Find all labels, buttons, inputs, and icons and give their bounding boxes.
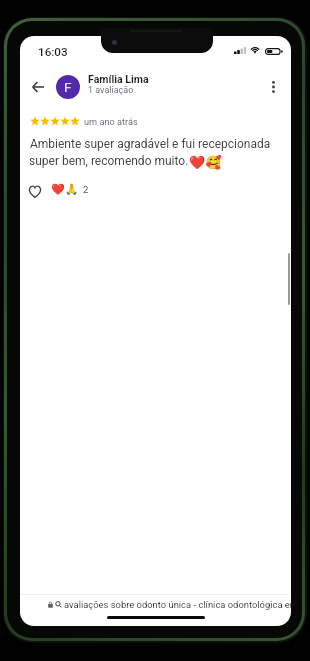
staticText: 1 avaliação xyxy=(88,85,134,96)
staticText: 16:03 xyxy=(38,45,68,59)
staticText: um ano atrás xyxy=(84,116,138,127)
button[interactable]: avaliações sobre odonto única - clínica … xyxy=(20,595,291,613)
staticText: F xyxy=(64,79,72,95)
staticText: ❤️🙏 xyxy=(51,183,79,196)
staticText: super bem, recomendo muito. xyxy=(29,154,189,168)
staticText: ❤️🥰 xyxy=(189,155,222,170)
button[interactable]: Voltar xyxy=(28,77,48,97)
staticText: 2 xyxy=(83,184,89,195)
button[interactable]: Mais opções xyxy=(262,76,284,98)
staticText: Ambiente super agradável e fui recepcion… xyxy=(30,137,271,151)
button[interactable]: ❤️🙏 xyxy=(51,183,89,196)
staticText: Família Lima xyxy=(88,73,149,85)
staticText: avaliações sobre odonto única - clínica … xyxy=(64,599,291,610)
button[interactable]: Curtir xyxy=(26,182,44,200)
